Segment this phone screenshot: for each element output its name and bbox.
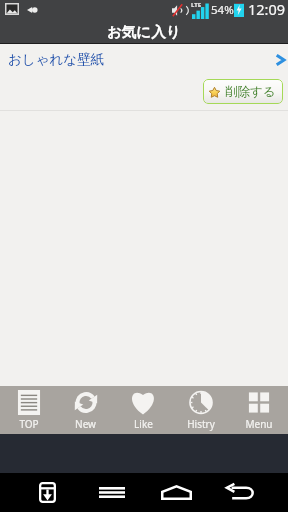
button[interactable]: TOP (0, 386, 57, 434)
button[interactable]: Menu (230, 386, 288, 434)
button[interactable]: Save (33, 479, 62, 506)
button[interactable]: Histry (172, 386, 230, 434)
staticText: 54% (211, 2, 234, 18)
button[interactable]: Home (158, 479, 195, 506)
staticText: TOP (19, 417, 39, 431)
staticText: 12:09 (248, 0, 286, 19)
button[interactable]: 削除する (203, 79, 283, 104)
button[interactable]: Like (114, 386, 172, 434)
button[interactable]: Back (222, 479, 258, 506)
button[interactable]: おしゃれな壁紙 (0, 48, 288, 70)
staticText: Histry (187, 417, 215, 431)
staticText: お気に入り (107, 23, 181, 41)
button[interactable]: Recent apps (95, 479, 129, 506)
staticText: Menu (245, 417, 273, 431)
staticText: New (75, 417, 96, 431)
staticText: おしゃれな壁紙 (8, 51, 105, 68)
button[interactable]: New (57, 386, 114, 434)
staticText: LTE (191, 1, 202, 9)
staticText: 削除する (225, 84, 276, 100)
staticText: Like (134, 417, 153, 431)
